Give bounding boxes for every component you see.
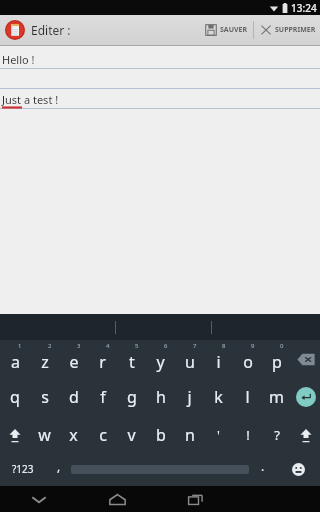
staticText: 4 — [106, 342, 110, 350]
button[interactable]: d — [59, 378, 88, 416]
staticText: 6 — [164, 342, 168, 350]
button[interactable]: f — [88, 378, 117, 416]
staticText: , — [57, 458, 61, 474]
button[interactable]: 0 — [262, 340, 291, 378]
button[interactable]: Backspace — [291, 340, 320, 378]
staticText: ' — [217, 426, 220, 444]
staticText: ? — [274, 426, 280, 444]
button[interactable]: 8 — [204, 340, 233, 378]
button[interactable]: Home — [78, 486, 156, 512]
staticText: v — [127, 424, 136, 446]
staticText: k — [214, 386, 223, 408]
staticText: r — [99, 351, 106, 373]
button[interactable]: 1 — [0, 340, 30, 378]
staticText: j — [187, 386, 192, 408]
staticText: l — [245, 386, 250, 408]
staticText: Hello ! — [2, 52, 35, 67]
button[interactable]: m — [262, 378, 291, 416]
button[interactable]: n — [175, 416, 204, 454]
staticText: d — [69, 386, 79, 408]
staticText: h — [156, 386, 166, 408]
staticText: 7 — [193, 342, 197, 350]
button[interactable]: g — [117, 378, 146, 416]
other: Sauver — [205, 24, 217, 36]
staticText: w — [38, 424, 51, 446]
button[interactable]: Sauver — [200, 15, 253, 45]
staticText: m — [269, 386, 284, 408]
staticText: x — [69, 424, 78, 446]
staticText: Editer : — [31, 22, 71, 38]
button[interactable]: . — [249, 454, 276, 484]
staticText: i — [216, 351, 221, 373]
staticText: p — [272, 351, 282, 373]
staticText: 1 — [18, 342, 22, 350]
button[interactable]: Space — [71, 454, 249, 484]
staticText: SUPPRIMER — [275, 25, 316, 35]
button[interactable]: ? — [262, 416, 291, 454]
staticText: ?123 — [12, 462, 34, 476]
staticText: Just a test ! — [2, 92, 59, 107]
staticText: ! — [246, 426, 250, 444]
button[interactable]: c — [88, 416, 117, 454]
button[interactable]: 5 — [117, 340, 146, 378]
staticText: n — [185, 424, 195, 446]
button[interactable]: q — [0, 378, 30, 416]
button[interactable]: b — [146, 416, 175, 454]
staticText: 0 — [280, 342, 284, 350]
staticText: 2 — [48, 342, 52, 350]
staticText: 5 — [135, 342, 139, 350]
button[interactable]: ! — [233, 416, 262, 454]
button[interactable]: Recents — [156, 486, 234, 512]
staticText: g — [127, 386, 137, 408]
button[interactable]: Hide keyboard — [0, 486, 78, 512]
staticText: c — [99, 424, 107, 446]
staticText: 13:24 — [291, 1, 317, 15]
other: Supprimer — [260, 24, 272, 36]
button[interactable]: 6 — [146, 340, 175, 378]
button[interactable]: Supprimer — [254, 15, 320, 45]
staticText: z — [41, 351, 49, 373]
button[interactable]: , — [46, 454, 71, 484]
button[interactable]: ?123 — [0, 454, 46, 484]
button[interactable]: 7 — [175, 340, 204, 378]
staticText: t — [129, 351, 135, 373]
button[interactable]: ' — [204, 416, 233, 454]
button[interactable]: 9 — [233, 340, 262, 378]
staticText: 8 — [222, 342, 226, 350]
button[interactable]: s — [30, 378, 59, 416]
button[interactable]: Shift — [291, 416, 320, 454]
button[interactable]: Hello ! — [0, 46, 320, 314]
button[interactable]: 4 — [88, 340, 117, 378]
staticText: u — [185, 351, 195, 373]
staticText: a — [11, 351, 20, 373]
button[interactable]: j — [175, 378, 204, 416]
button[interactable]: k — [204, 378, 233, 416]
button[interactable]: x — [59, 416, 88, 454]
staticText: 9 — [251, 342, 255, 350]
button[interactable]: 3 — [59, 340, 88, 378]
button[interactable]: h — [146, 378, 175, 416]
button[interactable]: Enter — [291, 378, 320, 416]
staticText: 3 — [77, 342, 81, 350]
button[interactable]: l — [233, 378, 262, 416]
button[interactable]: 2 — [30, 340, 59, 378]
button[interactable]: Shift — [0, 416, 30, 454]
staticText: q — [10, 386, 20, 408]
button[interactable]: Emoji — [276, 454, 320, 484]
staticText: SAUVER — [220, 25, 248, 35]
staticText: f — [100, 386, 106, 408]
staticText: b — [156, 424, 166, 446]
staticText: . — [261, 458, 265, 474]
staticText: y — [156, 351, 165, 373]
button[interactable]: Editer : — [0, 20, 77, 40]
staticText: s — [41, 386, 49, 408]
staticText: e — [69, 351, 79, 373]
button[interactable]: w — [30, 416, 59, 454]
button[interactable]: v — [117, 416, 146, 454]
staticText: o — [243, 351, 253, 373]
